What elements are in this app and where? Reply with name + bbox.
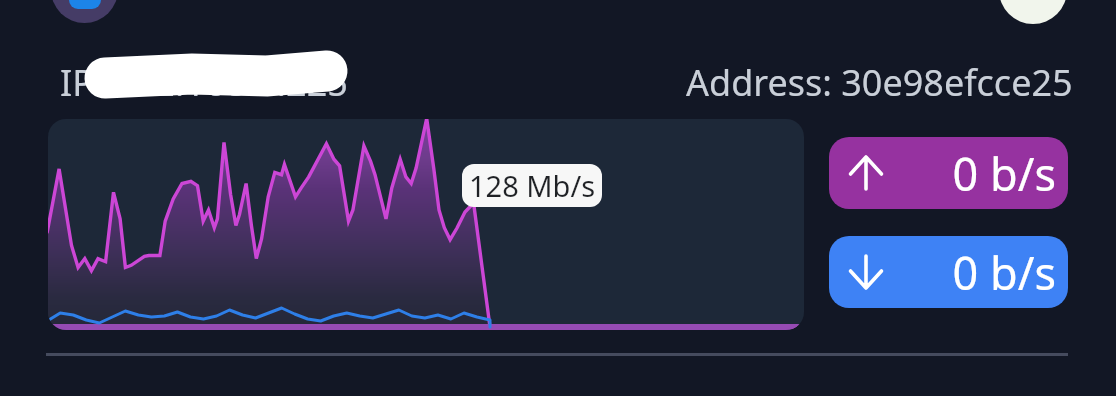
- button[interactable]: 0 b/s: [829, 137, 1068, 209]
- button[interactable]: Profile: [51, 0, 118, 23]
- staticText: 0 b/s: [884, 242, 1056, 303]
- staticText: Address: 30e98efcce25: [686, 58, 1073, 107]
- staticText: 0 b/s: [884, 143, 1056, 204]
- button[interactable]: 0 b/s: [829, 236, 1068, 308]
- staticText: IP: 192.168.1.225: [60, 58, 348, 107]
- staticText: 128 Mb/s: [469, 166, 596, 205]
- button[interactable]: Avatar: [999, 0, 1067, 24]
